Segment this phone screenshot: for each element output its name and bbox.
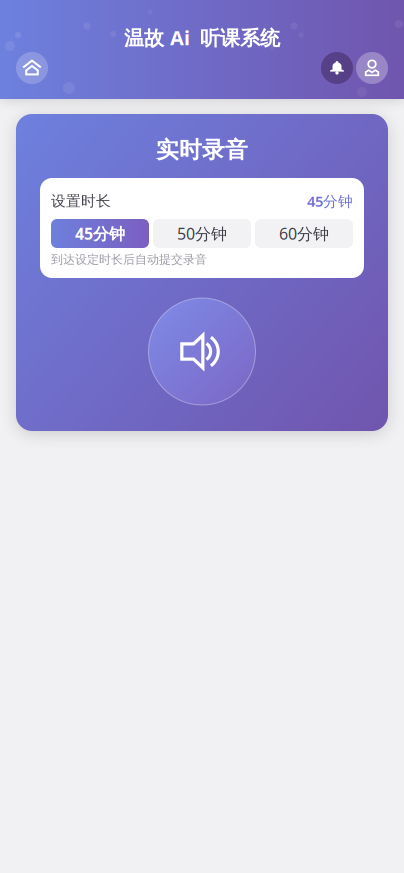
staticText: 实时录音 (156, 136, 248, 164)
staticText: 45分钟 (307, 191, 353, 211)
button[interactable]: 50分钟 (153, 219, 251, 248)
button[interactable]: 45分钟 (51, 219, 149, 248)
staticText: 设置时长 (51, 192, 111, 210)
button[interactable]: 60分钟 (255, 219, 353, 248)
button[interactable]: Start recording (148, 298, 255, 405)
button[interactable]: Notifications (321, 52, 353, 84)
staticText: 60分钟 (279, 223, 329, 244)
staticText: 45分钟 (75, 223, 125, 244)
button[interactable]: Profile (356, 52, 388, 84)
button[interactable]: Home (16, 52, 48, 84)
staticText: 50分钟 (177, 223, 227, 244)
staticText: 到达设定时长后自动提交录音 (51, 252, 207, 267)
staticText: 温故 Ai 听课系统 (124, 24, 280, 51)
